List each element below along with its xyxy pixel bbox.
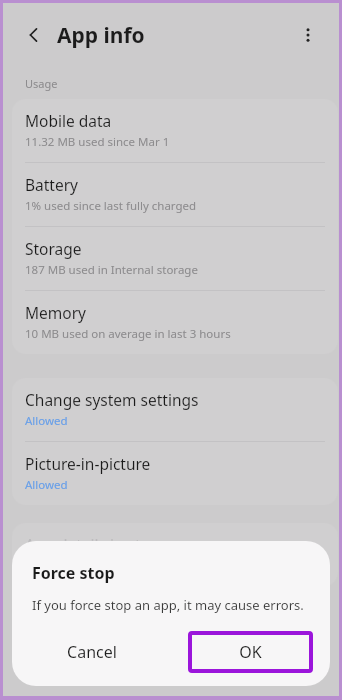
button[interactable]: Mobile data [12, 99, 338, 162]
staticText: Allowed [25, 413, 68, 429]
staticText: 187 MB used in Internal storage [25, 262, 198, 278]
button[interactable]: Memory [12, 291, 338, 354]
staticText: Battery [25, 174, 79, 195]
button[interactable]: Back [17, 18, 51, 52]
staticText: App details in store [25, 534, 165, 555]
button[interactable]: Storage [12, 227, 338, 290]
staticText: 11.32 MB used since Mar 1 [25, 134, 170, 150]
staticText: Disable [154, 669, 189, 683]
button[interactable]: Change system settings [12, 378, 338, 441]
button[interactable]: Battery [12, 163, 338, 226]
staticText: Picture-in-picture [25, 453, 151, 474]
staticText: Allowed [25, 477, 68, 493]
staticText: Usage [25, 76, 58, 91]
staticText: Change system settings [25, 389, 199, 410]
button[interactable]: More options [291, 18, 325, 52]
staticText: App installed from Google Play Store [25, 558, 223, 574]
staticText: Force stop [32, 562, 115, 584]
staticText: If you force stop an app, it may cause e… [32, 596, 304, 614]
staticText: 1% used since last fully charged [25, 198, 197, 214]
button[interactable]: Cancel [12, 630, 171, 674]
button[interactable]: Picture-in-picture [12, 442, 338, 505]
staticText: Memory [25, 302, 86, 323]
staticText: Cancel [67, 641, 117, 663]
button[interactable]: Disable [123, 640, 219, 687]
staticText: App info [57, 21, 145, 50]
button[interactable]: App details in store [12, 523, 338, 586]
staticText: OK [239, 641, 262, 663]
staticText: Force stop [255, 669, 304, 683]
button[interactable]: Open [15, 640, 111, 687]
staticText: 10 MB used on average in last 3 hours [25, 326, 231, 342]
button[interactable]: OK [188, 631, 313, 673]
button[interactable]: Force stop [231, 640, 327, 687]
staticText: Storage [25, 238, 82, 259]
staticText: Mobile data [25, 110, 112, 131]
